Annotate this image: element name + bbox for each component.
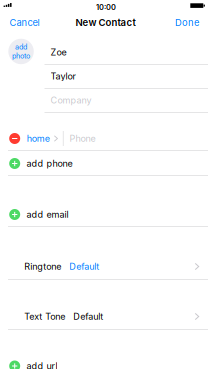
staticText: Default xyxy=(73,311,103,322)
staticText: Default xyxy=(69,261,99,272)
button[interactable]: Ringtone xyxy=(0,253,208,280)
staticText: Company xyxy=(50,95,91,106)
button[interactable]: Text Tone xyxy=(0,303,208,330)
button[interactable]: Done xyxy=(168,14,208,31)
button[interactable]: add phone xyxy=(0,151,208,176)
staticText: add xyxy=(15,43,27,51)
staticText: Ringtone xyxy=(24,261,61,272)
staticText: home xyxy=(27,133,50,144)
staticText: Phone xyxy=(70,133,96,144)
staticText: Done xyxy=(175,17,199,28)
button[interactable]: home xyxy=(20,126,58,151)
staticText: Text Tone xyxy=(24,311,65,322)
button[interactable]: add email xyxy=(0,202,208,227)
staticText: photo xyxy=(12,51,30,60)
button[interactable]: add xyxy=(8,39,34,64)
staticText: add email xyxy=(26,209,68,220)
staticText: New Contact xyxy=(75,17,135,28)
staticText: add url xyxy=(26,360,57,369)
button[interactable]: add url xyxy=(0,353,208,369)
staticText: Taylor xyxy=(50,71,75,82)
staticText: Cancel xyxy=(9,17,39,28)
button[interactable]: Cancel xyxy=(0,14,46,31)
staticText: Zoe xyxy=(50,47,66,58)
staticText: 10:00 xyxy=(96,3,116,12)
staticText: add phone xyxy=(26,158,72,169)
